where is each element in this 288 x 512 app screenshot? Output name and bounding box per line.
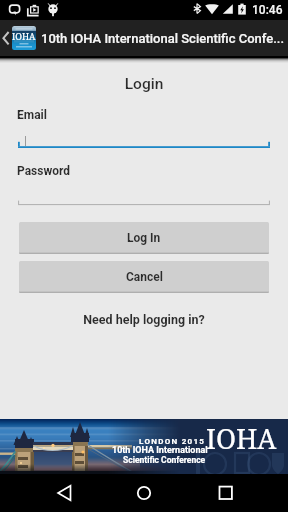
button[interactable]: Log In [19, 222, 269, 254]
staticText: Need help logging in? [83, 312, 205, 327]
staticText: Cancel [126, 270, 163, 284]
staticText: IOHA [206, 420, 277, 457]
button[interactable]: Home [96, 474, 192, 512]
staticText: Scientific Conference [123, 455, 206, 465]
staticText: Email [17, 108, 47, 122]
staticText: IOHA [12, 30, 36, 42]
staticText: 10th IOHA International Scientific Confe… [41, 31, 285, 46]
staticText: Log In [127, 231, 161, 245]
staticText: 10:46 [252, 3, 283, 17]
button[interactable]: Cancel [19, 261, 269, 293]
button[interactable]: Need help logging in? [0, 310, 288, 328]
button[interactable]: LONDON 2015 10th IOHA International Scie… [0, 419, 288, 474]
staticText: 10th IOHA International [112, 445, 208, 456]
staticText: Login [0, 75, 288, 93]
staticText: Password [17, 164, 71, 178]
button[interactable]: Recent apps [192, 474, 288, 512]
button[interactable]: Back [0, 474, 96, 512]
staticText: LONDON 2015 [139, 437, 206, 446]
button[interactable]: Navigate up [0, 20, 36, 56]
